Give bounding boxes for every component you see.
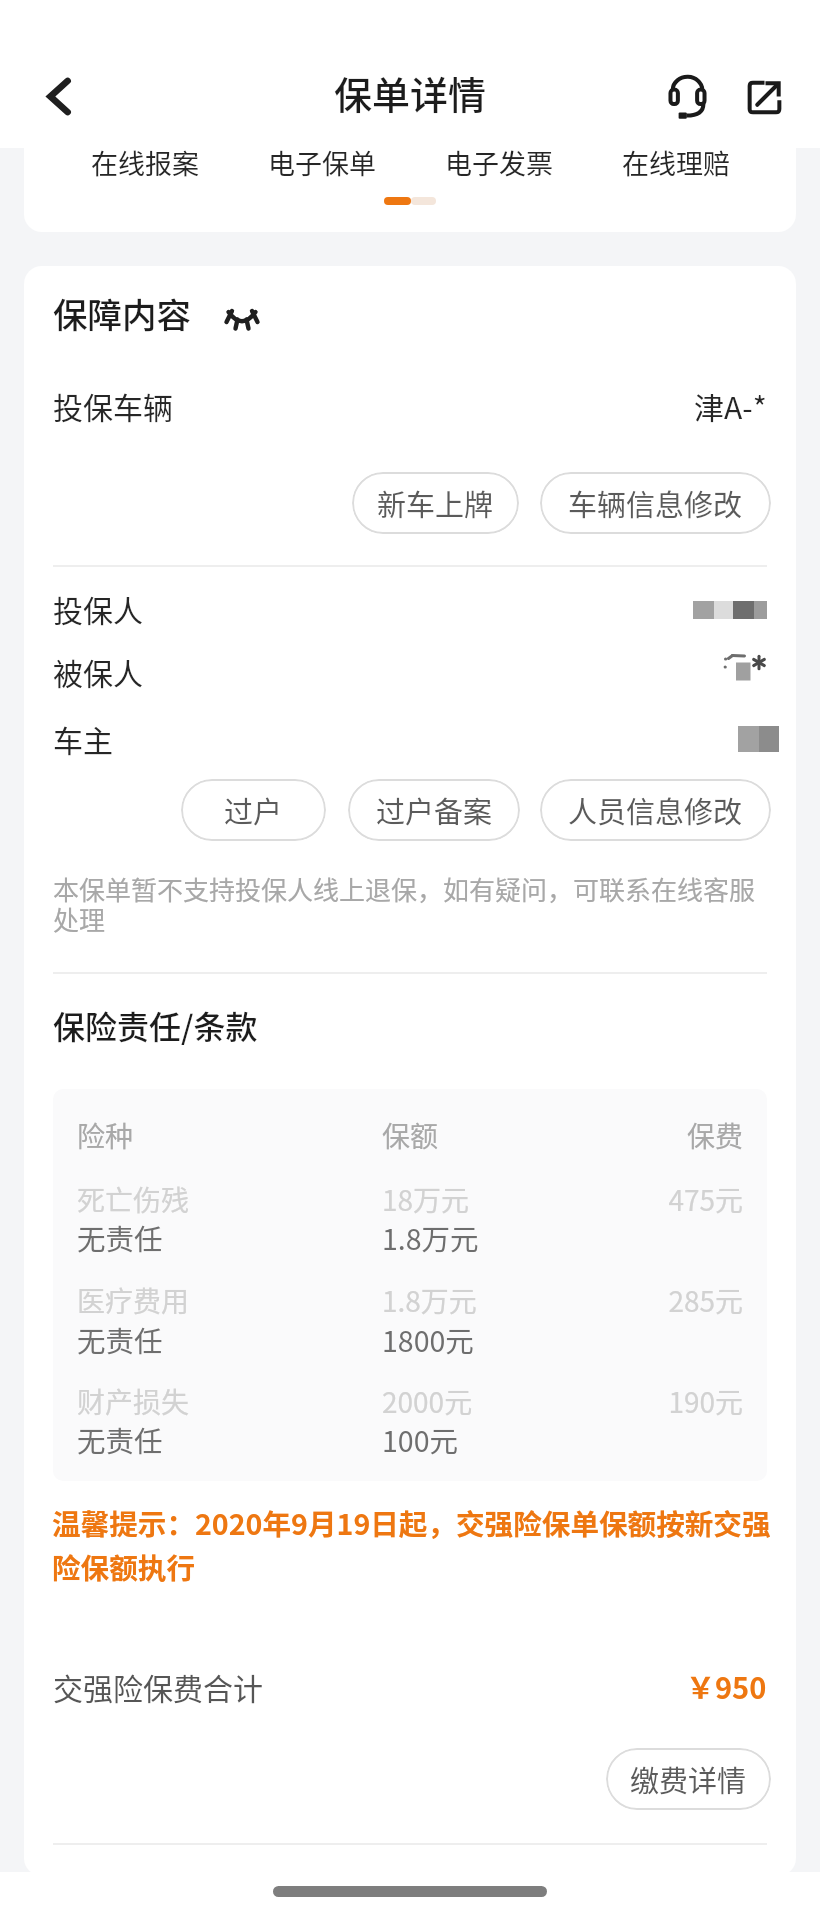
button[interactable]: 人员信息修改 [540, 779, 771, 841]
staticText: 电子保单 [268, 143, 376, 182]
staticText: 温馨提示：2020年9月19日起，交强险保单保额按新交强险保额执行 [52, 1502, 788, 1587]
button[interactable]: 缴费详情 [606, 1748, 771, 1810]
staticText: 1800元 [382, 1319, 474, 1360]
button[interactable]: 电子发票 [410, 136, 587, 188]
staticText: 1.8万元 [382, 1280, 477, 1321]
staticText: 人员信息修改 [568, 789, 743, 831]
staticText: 无责任 [77, 1419, 163, 1460]
button[interactable]: 新车上牌 [352, 472, 519, 534]
staticText: 险种 [77, 1115, 134, 1156]
staticText: 投保人 [53, 587, 143, 627]
button[interactable]: 在线报案 [56, 136, 233, 188]
staticText: 新车上牌 [377, 482, 494, 524]
staticText: 电子发票 [445, 143, 553, 182]
staticText: 无责任 [77, 1319, 163, 1360]
staticText: 车主 [53, 717, 113, 757]
button[interactable]: 被保人 [53, 650, 767, 690]
staticText: 过户 [224, 789, 283, 831]
staticText: 475元 [77, 1179, 743, 1220]
button[interactable]: 投保车辆 [53, 384, 767, 424]
staticText: 津A-* [694, 384, 767, 424]
button[interactable]: 过户备案 [348, 779, 520, 841]
button[interactable]: 车主 [53, 717, 767, 757]
staticText: 投保车辆 [53, 384, 173, 424]
staticText: 保费 [77, 1115, 743, 1156]
staticText: 1.8万元 [382, 1217, 479, 1258]
staticText: 在线报案 [91, 143, 199, 182]
staticText: 保额 [382, 1115, 439, 1156]
staticText: 医疗费用 [77, 1280, 190, 1321]
staticText: 交强险保费合计 [53, 1665, 263, 1705]
button[interactable]: 投保人 [53, 587, 767, 627]
staticText: 财产损失 [77, 1381, 190, 1422]
staticText: 本保单暂不支持投保人线上退保，如有疑问，可联系在线客服处理 [53, 870, 767, 938]
staticText: 100元 [382, 1419, 458, 1460]
staticText: 285元 [77, 1280, 743, 1321]
staticText: 缴费详情 [630, 1758, 747, 1800]
button[interactable]: Share [729, 62, 799, 132]
button[interactable]: 过户 [181, 779, 326, 841]
button[interactable]: 车辆信息修改 [540, 472, 771, 534]
button[interactable]: 电子保单 [233, 136, 410, 188]
button[interactable]: Back [24, 61, 94, 131]
staticText: 过户备案 [376, 789, 493, 831]
button[interactable]: Hide details [221, 301, 265, 345]
staticText: 被保人 [53, 650, 143, 690]
staticText: 无责任 [77, 1217, 163, 1258]
staticText: ￥950 [686, 1665, 767, 1705]
staticText: 保单详情 [334, 65, 487, 120]
button[interactable]: Customer service [652, 61, 722, 131]
staticText: 190元 [77, 1381, 743, 1422]
staticText: 2000元 [382, 1381, 473, 1422]
staticText: 在线理赔 [622, 143, 730, 182]
staticText: 18万元 [382, 1179, 470, 1220]
button[interactable]: 在线理赔 [587, 136, 764, 188]
staticText: 死亡伤残 [77, 1179, 190, 1220]
staticText: 保障内容 [53, 288, 191, 338]
staticText: 保险责任/条款 [53, 1002, 258, 1048]
staticText: 车辆信息修改 [568, 482, 743, 524]
